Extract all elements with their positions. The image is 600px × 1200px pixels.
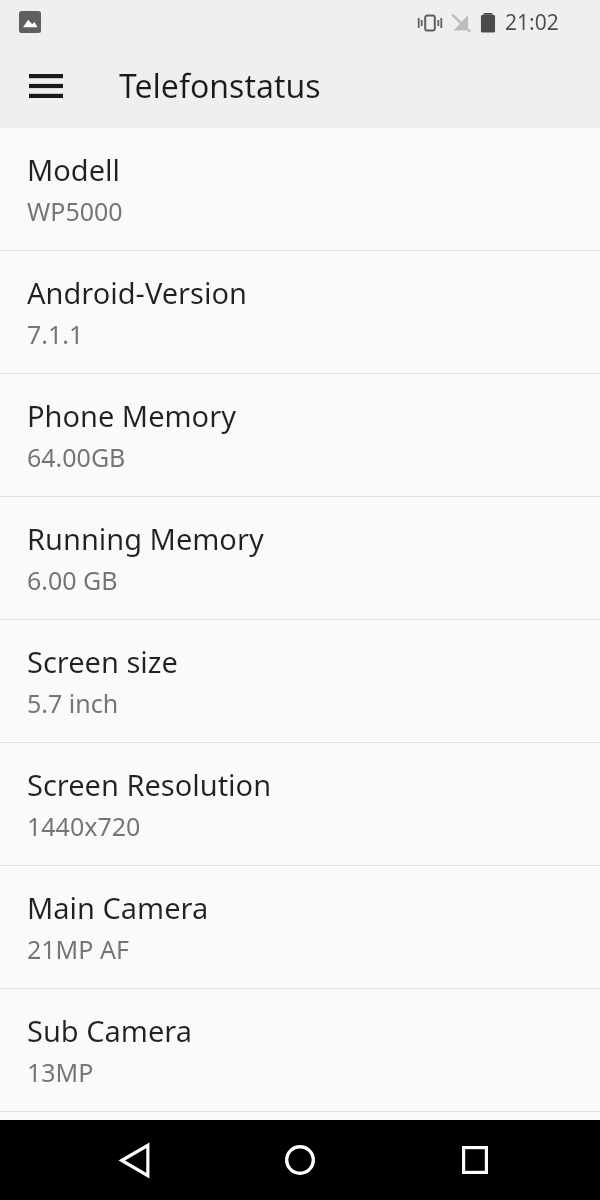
- staticText: Telefonstatus: [119, 64, 321, 108]
- staticText: 21:02: [505, 8, 559, 37]
- button[interactable]: Home: [265, 1125, 335, 1195]
- button[interactable]: Recent apps: [440, 1125, 510, 1195]
- button[interactable]: Sub Camera: [0, 989, 600, 1111]
- button[interactable]: Screen size: [0, 620, 600, 742]
- staticText: Phone Memory: [27, 396, 236, 435]
- button[interactable]: Android-Version: [0, 251, 600, 373]
- staticText: Sub Camera: [27, 1011, 192, 1050]
- staticText: Screen size: [27, 642, 178, 681]
- button[interactable]: Running Memory: [0, 497, 600, 619]
- staticText: Modell: [27, 150, 121, 189]
- staticText: 13MP: [27, 1055, 94, 1089]
- staticText: 7.1.1: [27, 317, 84, 351]
- staticText: 5.7 inch: [27, 686, 119, 720]
- button[interactable]: Screen Resolution: [0, 743, 600, 865]
- staticText: Android-Version: [27, 273, 247, 312]
- staticText: 6.00 GB: [27, 563, 118, 597]
- staticText: Main Camera: [27, 888, 209, 927]
- button[interactable]: Main Camera: [0, 866, 600, 988]
- button[interactable]: Open navigation menu: [14, 54, 78, 118]
- staticText: WP5000: [27, 194, 123, 228]
- button[interactable]: Modell: [0, 128, 600, 250]
- staticText: 21MP AF: [27, 932, 129, 966]
- button[interactable]: Phone Memory: [0, 374, 600, 496]
- staticText: 1440x720: [27, 809, 141, 843]
- staticText: 64.00GB: [27, 440, 126, 474]
- staticText: Screen Resolution: [27, 765, 272, 804]
- button[interactable]: Back: [99, 1125, 169, 1195]
- staticText: Running Memory: [27, 519, 264, 558]
